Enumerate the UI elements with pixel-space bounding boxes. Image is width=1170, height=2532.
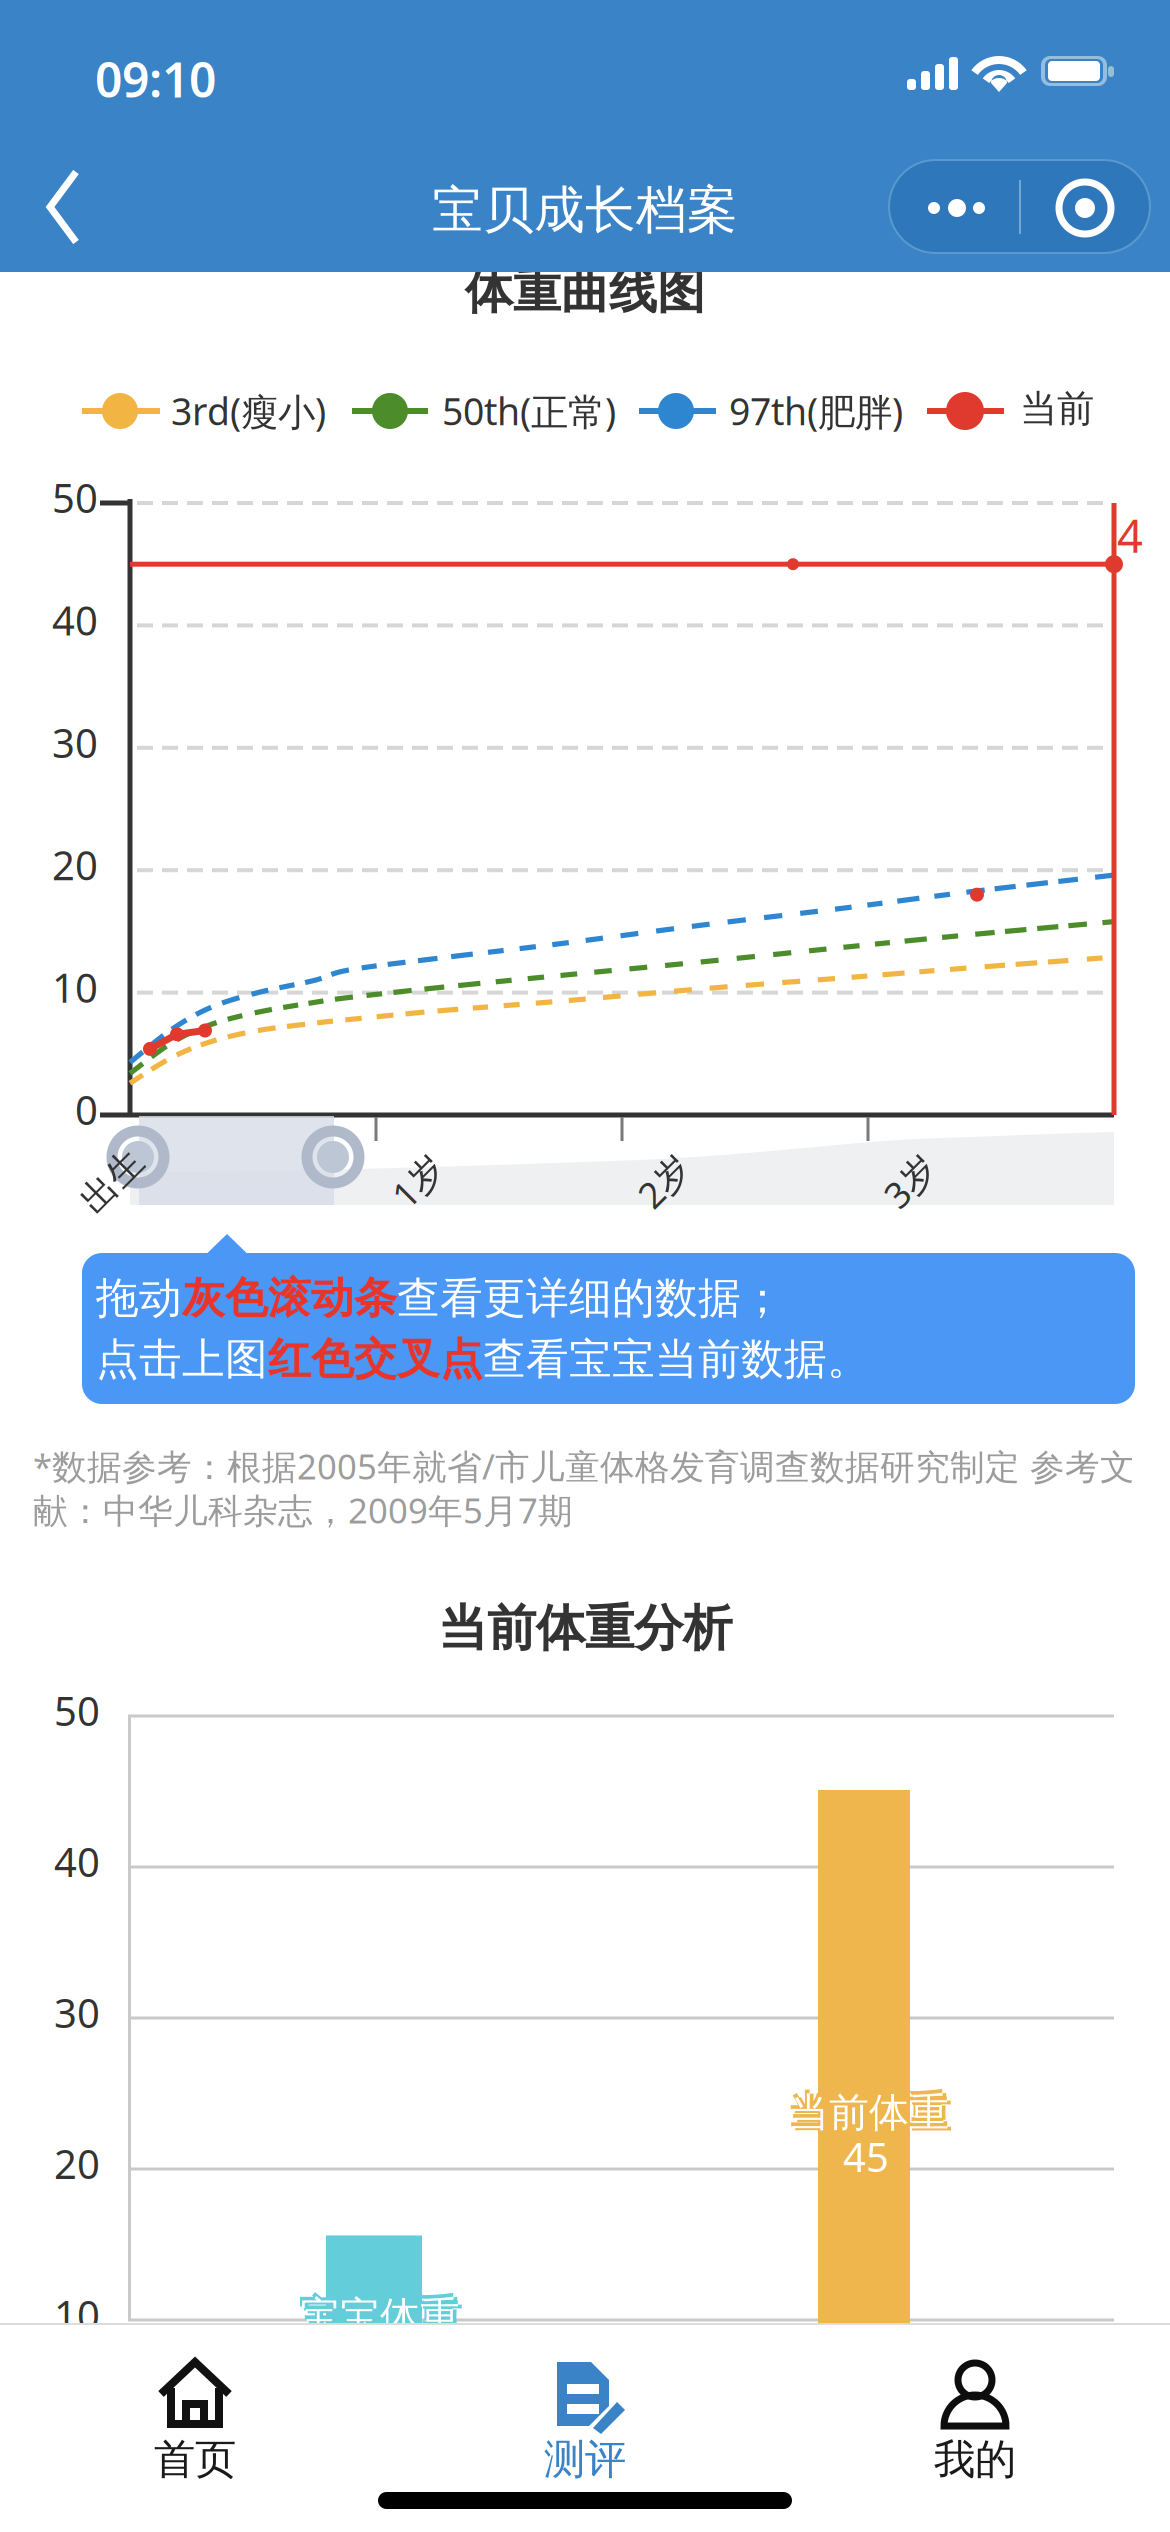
staticText: 50th(正常) — [442, 386, 616, 436]
staticText: 查看更详细的数据； — [397, 1272, 784, 1324]
staticText: 当前体重 — [791, 2090, 951, 2139]
staticText: 我的 — [934, 2434, 1016, 2485]
staticText: 0 — [75, 1083, 98, 1136]
staticText: 10 — [52, 961, 98, 1014]
staticText: 献：中华儿科杂志，2009年5月7期 — [33, 1487, 573, 1533]
staticText: 当前体重 — [787, 2086, 947, 2135]
staticText: 20 — [54, 2137, 100, 2190]
staticText: 45 — [843, 2130, 889, 2183]
button[interactable]: More options — [889, 160, 1150, 253]
button[interactable]: Back — [20, 148, 130, 268]
button[interactable]: 我的 — [780, 2356, 1170, 2516]
staticText: 当前体重分析 — [438, 1598, 732, 1659]
staticText: 40 — [52, 593, 98, 646]
staticText: 50 — [54, 1684, 100, 1737]
staticText: 1岁 — [389, 1157, 446, 1205]
button[interactable]: 首页 — [0, 2356, 390, 2516]
staticText: 点击上图 — [96, 1333, 268, 1385]
staticText: 4 — [1117, 505, 1143, 565]
staticText: 宝宝体重 — [298, 2290, 458, 2339]
staticText: 3rd(瘦小) — [171, 386, 326, 436]
staticText: 09:10 — [95, 47, 216, 111]
staticText: 50 — [52, 471, 98, 524]
staticText: 10 — [54, 2288, 100, 2341]
staticText: 测评 — [544, 2434, 626, 2485]
staticText: 20 — [52, 838, 98, 891]
staticText: 当前 — [1020, 386, 1094, 432]
staticText: 宝宝体重 — [302, 2294, 462, 2343]
staticText: 97th(肥胖) — [729, 386, 903, 436]
staticText: 宝宝体重 — [300, 2292, 460, 2341]
staticText: 查看宝宝当前数据。 — [483, 1333, 870, 1385]
staticText: 首页 — [154, 2434, 236, 2485]
button[interactable]: 测评 — [390, 2356, 780, 2516]
staticText: 30 — [54, 1986, 100, 2039]
staticText: 拖动 — [96, 1272, 182, 1324]
staticText: 灰色滚动条 — [182, 1272, 397, 1324]
staticText: 当前体重 — [789, 2088, 949, 2137]
staticText: 2岁 — [635, 1157, 692, 1205]
staticText: 出生 — [76, 1159, 148, 1203]
staticText: 宝贝成长档案 — [432, 179, 738, 241]
staticText: 40 — [54, 1835, 100, 1888]
staticText: 体重曲线图 — [465, 262, 705, 321]
staticText: *数据参考：根据2005年就省/市儿童体格发育调查数据研究制定 参考文 — [33, 1443, 1135, 1489]
staticText: 红色交叉点 — [268, 1333, 483, 1385]
staticText: 3岁 — [881, 1157, 938, 1205]
staticText: 30 — [52, 716, 98, 769]
